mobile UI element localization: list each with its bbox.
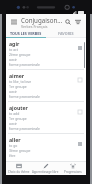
button[interactable]: Favorite xyxy=(76,108,83,115)
staticText: avoir xyxy=(9,121,17,126)
staticText: aller xyxy=(9,136,21,143)
staticText: forme pronominale xyxy=(9,94,41,99)
staticText: avoir xyxy=(9,57,17,62)
button[interactable]: Conjugaison des... xyxy=(21,16,63,29)
staticText: Conjugaison des... xyxy=(21,16,63,24)
button[interactable]: Search xyxy=(63,17,73,27)
staticText: 1er groupe xyxy=(9,116,27,121)
button[interactable]: agir xyxy=(6,38,86,69)
staticText: TOUS LES VERBES xyxy=(10,31,42,36)
staticText: Choix du thème xyxy=(8,170,30,174)
staticText: aimer xyxy=(9,72,25,79)
staticText: avoir xyxy=(9,89,17,94)
staticText: 3ème groupe xyxy=(9,148,31,153)
staticText: 1er groupe xyxy=(9,84,27,89)
button[interactable]: Filter xyxy=(73,17,83,27)
staticText: Progressions xyxy=(64,170,82,174)
staticText: FAVORIS xyxy=(58,31,74,36)
button[interactable]: Menu xyxy=(9,17,19,27)
staticText: to act xyxy=(9,47,18,52)
staticText: forme pronominale xyxy=(9,126,41,131)
staticText: ajouter xyxy=(9,104,28,111)
button[interactable]: FAVORIS xyxy=(46,30,86,37)
button[interactable]: Favorite xyxy=(76,44,83,51)
staticText: forme pronominale xyxy=(9,62,41,67)
staticText: 2ème groupe xyxy=(9,52,31,57)
staticText: to add xyxy=(9,111,20,116)
staticText: Verbes Français xyxy=(21,24,48,29)
button[interactable]: ajouter xyxy=(6,102,86,133)
staticText: agir xyxy=(9,40,20,47)
button[interactable]: aller xyxy=(6,134,86,161)
staticText: to like, to love xyxy=(9,79,32,84)
button[interactable]: Progressions xyxy=(59,162,86,175)
button[interactable]: TOUS LES VERBES xyxy=(6,30,46,37)
staticText: to go xyxy=(9,143,18,148)
staticText: être xyxy=(9,153,16,158)
button[interactable]: Apprentissage libre xyxy=(32,162,59,175)
button[interactable]: aimer xyxy=(6,70,86,101)
button[interactable]: Choix du thème xyxy=(6,162,32,175)
button[interactable]: Favorite xyxy=(76,140,83,147)
staticText: Apprentissage libre xyxy=(32,170,59,174)
button[interactable]: Favorite xyxy=(76,76,83,83)
